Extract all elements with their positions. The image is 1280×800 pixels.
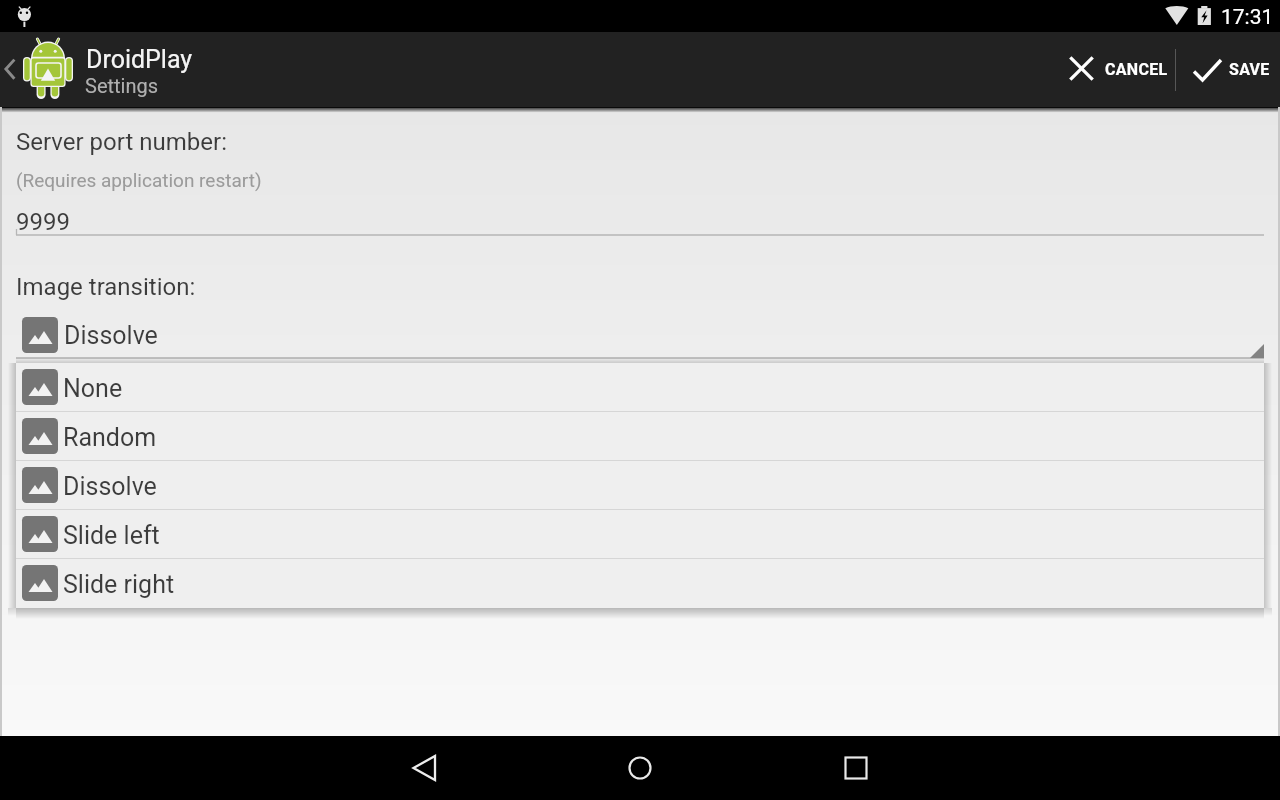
button[interactable]: Slide left (16, 510, 1264, 558)
button[interactable]: Slide right (16, 559, 1264, 608)
staticText: Server port number: (16, 128, 227, 156)
staticText: Slide right (63, 570, 175, 599)
button[interactable]: Dissolve (16, 461, 1264, 509)
button[interactable]: Back (389, 736, 461, 800)
staticText: DroidPlay (86, 45, 193, 74)
button[interactable]: Random (16, 412, 1264, 460)
staticText: Image transition: (16, 273, 196, 301)
button[interactable]: Recent apps (820, 736, 892, 800)
staticText: Random (63, 423, 157, 452)
staticText: SAVE (1229, 60, 1270, 79)
staticText: CANCEL (1105, 60, 1168, 79)
staticText: (Requires application restart) (16, 169, 262, 191)
button[interactable]: CANCEL (1063, 32, 1175, 107)
button[interactable]: SAVE (1188, 32, 1276, 107)
button[interactable]: Navigate up (0, 32, 230, 107)
staticText: Slide left (63, 521, 160, 550)
staticText: 17:31 (1221, 5, 1274, 30)
staticText: Settings (85, 74, 159, 97)
button[interactable]: Home (604, 736, 676, 800)
staticText: Dissolve (64, 321, 158, 350)
staticText: Dissolve (63, 472, 157, 501)
button[interactable]: None (16, 363, 1264, 411)
staticText: None (63, 374, 123, 403)
button[interactable]: Dissolve (0, 310, 1280, 366)
staticText: 9999 (16, 208, 70, 236)
